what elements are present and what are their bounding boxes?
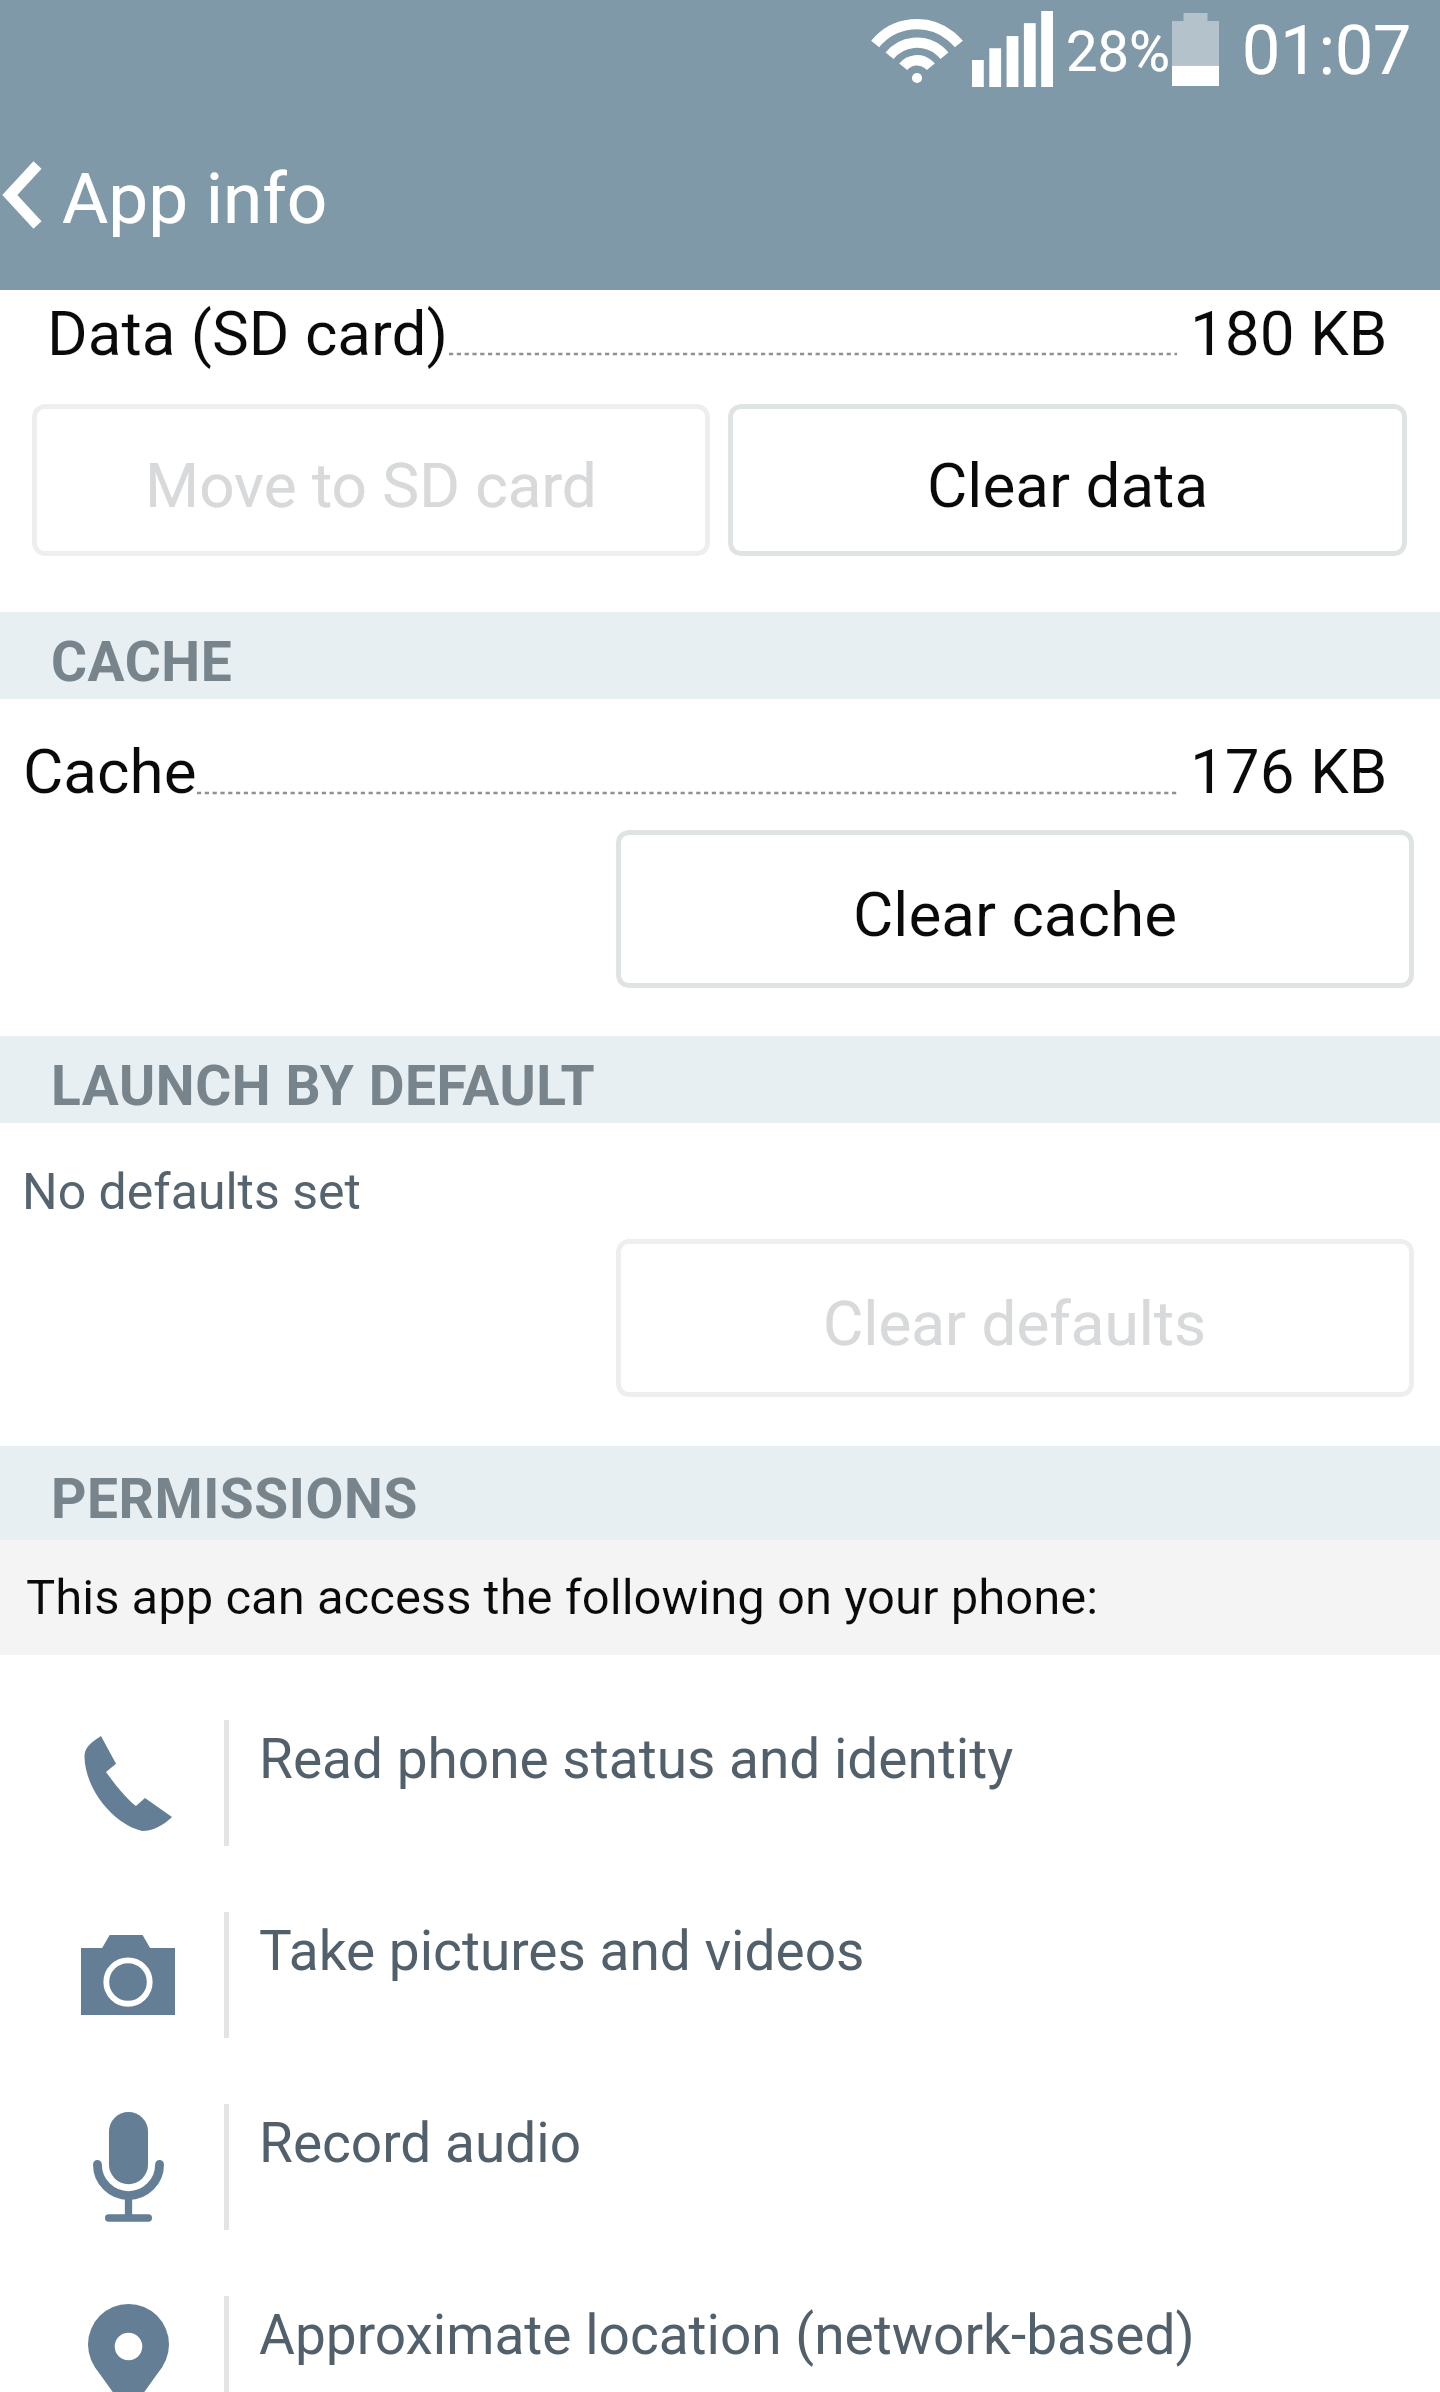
other: Back — [3, 159, 43, 231]
staticText: PERMISSIONS — [51, 1467, 418, 1531]
staticText: Data (SD card) — [47, 297, 449, 370]
staticText: LAUNCH BY DEFAULT — [51, 1054, 596, 1118]
button[interactable]: Record audio — [0, 2071, 1440, 2263]
staticText: This app can access the following on you… — [26, 1569, 1099, 1626]
staticText: CACHE — [51, 630, 233, 694]
button[interactable]: Take pictures and videos — [0, 1879, 1440, 2071]
button[interactable]: Back — [0, 100, 1440, 290]
staticText: No defaults set — [22, 1163, 361, 1222]
staticText: Take pictures and videos — [259, 1919, 865, 1983]
staticText: 176 KB — [1190, 735, 1388, 808]
staticText: 180 KB — [1190, 297, 1388, 370]
staticText: Approximate location (network-based) — [259, 2303, 1195, 2367]
staticText: App info — [62, 157, 328, 240]
staticText: 01:07 — [1242, 11, 1412, 91]
staticText: Record audio — [259, 2111, 581, 2175]
button[interactable]: Clear defaults — [616, 1239, 1414, 1397]
staticText: Cache — [23, 735, 197, 808]
button[interactable]: Clear cache — [616, 830, 1414, 988]
staticText: Move to SD card — [145, 449, 597, 522]
staticText: Clear cache — [853, 878, 1178, 951]
button[interactable]: Read phone status and identity — [0, 1687, 1440, 1879]
staticText: Clear data — [927, 449, 1209, 522]
staticText: 28% — [1066, 19, 1170, 85]
staticText: Clear defaults — [823, 1287, 1207, 1360]
button[interactable]: Move to SD card — [32, 404, 710, 556]
staticText: Read phone status and identity — [259, 1727, 1014, 1791]
button[interactable]: Approximate location (network-based) — [0, 2263, 1440, 2392]
button[interactable]: Clear data — [728, 404, 1407, 556]
